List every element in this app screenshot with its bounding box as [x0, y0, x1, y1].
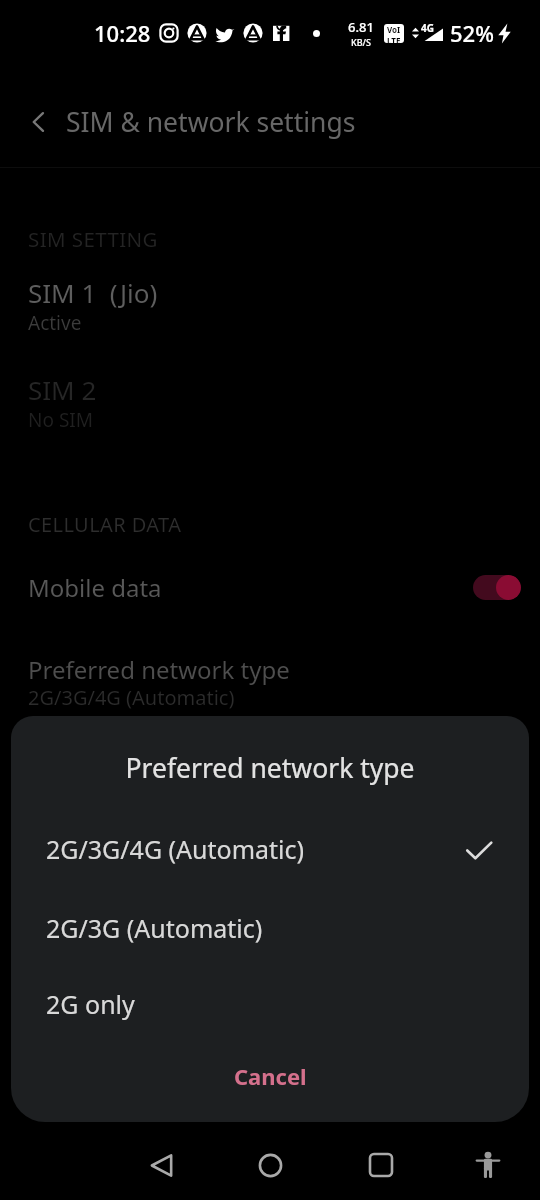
button[interactable]: Back [18, 101, 60, 143]
staticText: Preferred network type [28, 653, 290, 686]
staticText: 10:28 [94, 18, 151, 48]
staticText: SIM SETTING [28, 225, 158, 253]
button[interactable]: Back [130, 1134, 192, 1196]
staticText: 4G [421, 21, 434, 35]
button[interactable]: Preferred network type [0, 645, 540, 721]
staticText: CELLULAR DATA [28, 511, 182, 538]
staticText: Preferred network type [11, 750, 529, 786]
staticText: Mobile data [28, 571, 162, 604]
staticText: 2G/3G/4G (Automatic) [28, 684, 235, 711]
staticText: LTE [387, 35, 401, 43]
button[interactable]: 2G/3G (Automatic) [11, 889, 529, 966]
button[interactable]: SIM 2 [0, 362, 540, 438]
button[interactable]: Accessibility [457, 1134, 519, 1196]
staticText: SIM 1 (Jio) [28, 275, 158, 310]
button[interactable]: SIM 1 (Jio) [0, 265, 540, 341]
button[interactable]: Recent apps [350, 1134, 412, 1196]
button[interactable]: Home [239, 1134, 301, 1196]
staticText: VoI [387, 24, 401, 35]
staticText: 52% [450, 18, 494, 48]
button[interactable]: 2G/3G/4G (Automatic) [11, 810, 529, 888]
staticText: 2G only [46, 987, 135, 1021]
staticText: SIM 2 [28, 372, 97, 407]
button[interactable]: Cancel [208, 1051, 333, 1101]
staticText: 2G/3G/4G (Automatic) [46, 832, 305, 866]
staticText: Cancel [234, 1061, 307, 1091]
button[interactable]: 2G only [11, 966, 529, 1042]
staticText: No SIM [28, 407, 93, 433]
staticText: 2G/3G (Automatic) [46, 911, 263, 945]
staticText: SIM & network settings [66, 104, 356, 140]
staticText: 6.81 [348, 18, 374, 36]
button[interactable]: Mobile data [0, 556, 540, 618]
staticText: KB/S [351, 36, 371, 48]
staticText: Active [28, 310, 82, 336]
